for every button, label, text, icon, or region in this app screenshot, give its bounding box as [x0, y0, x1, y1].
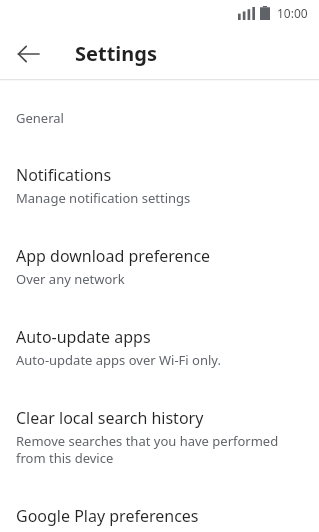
button[interactable]: Clear local search history — [0, 401, 319, 473]
staticText: General — [16, 109, 64, 127]
button[interactable]: Notifications — [0, 158, 319, 213]
staticText: Notifications — [16, 164, 112, 186]
staticText: Auto-update apps over Wi-Fi only. — [16, 351, 221, 369]
staticText: Manage notification settings — [16, 189, 191, 207]
button[interactable]: Google Play preferences — [0, 499, 319, 532]
staticText: Settings — [75, 40, 157, 67]
staticText: Over any network — [16, 270, 125, 288]
staticText: App download preference — [16, 245, 211, 267]
staticText: Remove searches that you have performed … — [16, 432, 303, 467]
staticText: 10:00 — [277, 5, 308, 21]
staticText: Auto-update apps — [16, 326, 151, 348]
button[interactable]: App download preference — [0, 239, 319, 294]
staticText: Google Play preferences — [16, 505, 199, 527]
button[interactable]: Auto-update apps — [0, 320, 319, 375]
staticText: Clear local search history — [16, 407, 204, 429]
button[interactable]: Back — [4, 30, 52, 78]
